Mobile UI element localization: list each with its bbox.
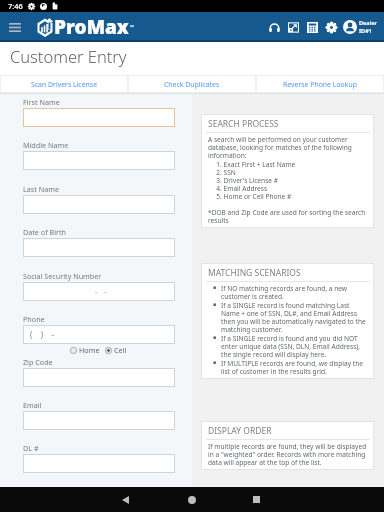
staticText: Dealer xyxy=(359,19,377,27)
staticText: First Name xyxy=(23,97,60,107)
staticText: If NO matching records are found, a new … xyxy=(221,284,348,301)
staticText: ™ xyxy=(130,24,134,31)
button[interactable]: Recents xyxy=(241,487,271,512)
staticText: ▪ xyxy=(213,334,217,340)
staticText: Last Name xyxy=(23,184,59,194)
button[interactable]: Calculator xyxy=(303,12,322,42)
staticText: ▪ xyxy=(213,359,217,365)
staticText: If MULTIPLE records are found, we displa… xyxy=(221,359,363,376)
staticText: Email xyxy=(23,400,42,410)
staticText: Cell xyxy=(114,345,127,355)
staticText: Reverse Phone Lookup xyxy=(283,80,357,89)
button[interactable]: Cell xyxy=(105,344,127,356)
button[interactable]: Settings xyxy=(322,12,341,42)
button[interactable]: Check Duplicates xyxy=(128,75,256,93)
button[interactable] xyxy=(23,151,175,170)
button[interactable]: Scan Drivers License xyxy=(0,75,128,93)
staticText: Social Security Number xyxy=(23,271,102,281)
staticText: Scan Drivers License xyxy=(31,80,98,89)
staticText: SEARCH PROCESS xyxy=(208,118,279,130)
staticText: DL # xyxy=(23,443,39,453)
staticText: - - xyxy=(95,287,107,297)
button[interactable]: Dealer xyxy=(343,12,384,42)
button[interactable] xyxy=(23,454,175,473)
button[interactable] xyxy=(23,195,175,214)
button[interactable]: Back xyxy=(110,487,140,512)
button[interactable] xyxy=(23,108,175,127)
button[interactable]: - - xyxy=(23,282,175,301)
staticText: Middle Name xyxy=(23,140,69,150)
staticText: ▪ xyxy=(213,301,217,307)
staticText: MATCHING SCENARIOS xyxy=(208,267,301,279)
button[interactable] xyxy=(23,368,175,387)
button[interactable] xyxy=(23,411,175,430)
button[interactable]: Home xyxy=(177,487,207,512)
staticText: DISPLAY ORDER xyxy=(208,425,272,437)
staticText: Phone xyxy=(23,314,45,324)
button[interactable]: Menu xyxy=(0,12,30,42)
staticText: If multiple records are found, they will… xyxy=(208,442,367,467)
staticText: ProMax xyxy=(54,14,129,40)
staticText: Customer Entry xyxy=(10,45,127,67)
staticText: Date of Birth xyxy=(23,227,67,237)
button[interactable] xyxy=(23,238,175,257)
button[interactable]: ( ) - xyxy=(23,325,175,344)
staticText: If a SINGLE record is found matching Las… xyxy=(221,301,366,334)
staticText: ▪ xyxy=(213,284,217,290)
button[interactable]: Support xyxy=(265,12,284,42)
staticText: ( ) - xyxy=(30,329,55,340)
staticText: Check Duplicates xyxy=(164,80,220,89)
staticText: ID#1 xyxy=(359,27,372,35)
button[interactable]: Home xyxy=(70,344,100,356)
staticText: Zip Code xyxy=(23,357,53,367)
staticText: 1. Exact First + Last Name 2. SSN 3. Dri… xyxy=(208,160,366,225)
button[interactable]: Reverse Phone Lookup xyxy=(256,75,384,93)
staticText: A search will be performed on your custo… xyxy=(208,135,352,160)
staticText: 7:46 xyxy=(8,1,23,11)
staticText: If a SINGLE record is found and you did … xyxy=(221,334,361,359)
button[interactable]: Inventory xyxy=(284,12,303,42)
staticText: Home xyxy=(79,345,100,355)
